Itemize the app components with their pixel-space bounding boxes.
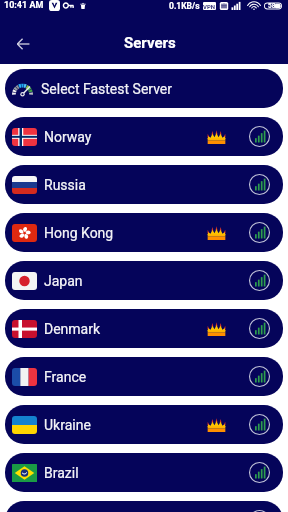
button[interactable]: Brazil xyxy=(5,453,283,492)
staticText: Norway xyxy=(44,129,92,145)
button[interactable]: Denmark xyxy=(5,309,283,348)
staticText: Brazil xyxy=(44,465,79,481)
staticText: Russia xyxy=(44,177,86,193)
staticText: Hong Kong xyxy=(44,225,114,241)
staticText: Servers xyxy=(124,34,176,52)
button[interactable]: Hong Kong xyxy=(5,213,283,252)
button[interactable]: France xyxy=(5,357,283,396)
button[interactable]: Back xyxy=(9,30,36,57)
staticText: Denmark xyxy=(44,321,101,337)
staticText: 0.1KB/s xyxy=(169,1,200,11)
button[interactable]: Select Fastest Server xyxy=(5,69,283,108)
staticText: 10:41 AM xyxy=(4,0,44,11)
button[interactable]: Russia xyxy=(5,165,283,204)
staticText: VPN xyxy=(203,3,216,10)
button[interactable]: Japan xyxy=(5,261,283,300)
button[interactable]: Ukraine xyxy=(5,405,283,444)
staticText: France xyxy=(44,369,87,385)
button[interactable]: Canada xyxy=(5,501,283,512)
staticText: Ukraine xyxy=(44,417,91,433)
button[interactable]: Norway xyxy=(5,117,283,156)
staticText: Select Fastest Server xyxy=(41,81,173,97)
staticText: 58 xyxy=(268,2,276,10)
staticText: Japan xyxy=(44,273,83,289)
